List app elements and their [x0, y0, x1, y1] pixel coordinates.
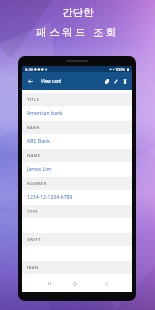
button[interactable]: Back [99, 275, 113, 292]
staticText: NUMBER [27, 181, 47, 187]
staticText: NAME [27, 153, 41, 159]
button[interactable]: Copy [102, 74, 111, 88]
button[interactable]: 1234-12-1234-6789 [22, 190, 132, 205]
staticText: IBAN [27, 265, 39, 271]
staticText: ABC Bank [27, 138, 50, 145]
staticText: TITLE [27, 97, 40, 103]
button[interactable]: Recent apps [42, 275, 56, 292]
staticText: American bank [27, 110, 63, 117]
staticText: TYPE [27, 209, 38, 215]
button[interactable]: ABC Bank [22, 134, 132, 149]
staticText: SWIFT [27, 237, 41, 243]
button[interactable]: Edit [111, 74, 120, 88]
staticText: 1234-12-1234-6789 [27, 194, 73, 201]
staticText: 6:30 [25, 67, 33, 72]
button[interactable] [22, 274, 132, 289]
staticText: BANK [27, 125, 40, 131]
staticText: 패스워드 조회 [36, 25, 119, 39]
staticText: 간단한 [62, 6, 94, 19]
button[interactable]: Home [68, 275, 82, 292]
button[interactable]: Back [24, 75, 36, 87]
button[interactable]: James Lim [22, 162, 132, 177]
staticText: View card [41, 78, 62, 84]
staticText: 100% [115, 67, 126, 72]
staticText: James Lim [27, 166, 52, 173]
button[interactable]: Delete [120, 74, 129, 88]
button[interactable]: American bank [22, 106, 132, 121]
